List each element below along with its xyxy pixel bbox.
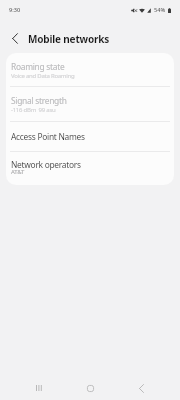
staticText: -116 dBm 99 asu bbox=[11, 106, 56, 114]
staticText: Network operators bbox=[11, 159, 81, 170]
button[interactable]: Signal strength bbox=[6, 87, 174, 121]
button[interactable]: Network operators bbox=[6, 152, 174, 185]
button[interactable]: Recent apps bbox=[27, 376, 51, 400]
staticText: 54% bbox=[154, 6, 166, 14]
button[interactable]: Back bbox=[129, 376, 153, 400]
staticText: Access Point Names bbox=[11, 131, 85, 142]
staticText: Roaming state bbox=[11, 61, 65, 72]
staticText: AT&T bbox=[11, 168, 24, 176]
button[interactable]: Access Point Names bbox=[6, 122, 174, 151]
staticText: Signal strength bbox=[11, 95, 67, 106]
button[interactable]: Roaming state bbox=[6, 53, 174, 86]
staticText: Mobile networks bbox=[28, 32, 110, 46]
button[interactable]: Home bbox=[78, 376, 102, 400]
staticText: Voice and Data Roaming bbox=[11, 72, 75, 80]
button[interactable]: Navigate up bbox=[4, 27, 26, 49]
staticText: 9:30 bbox=[9, 6, 21, 14]
